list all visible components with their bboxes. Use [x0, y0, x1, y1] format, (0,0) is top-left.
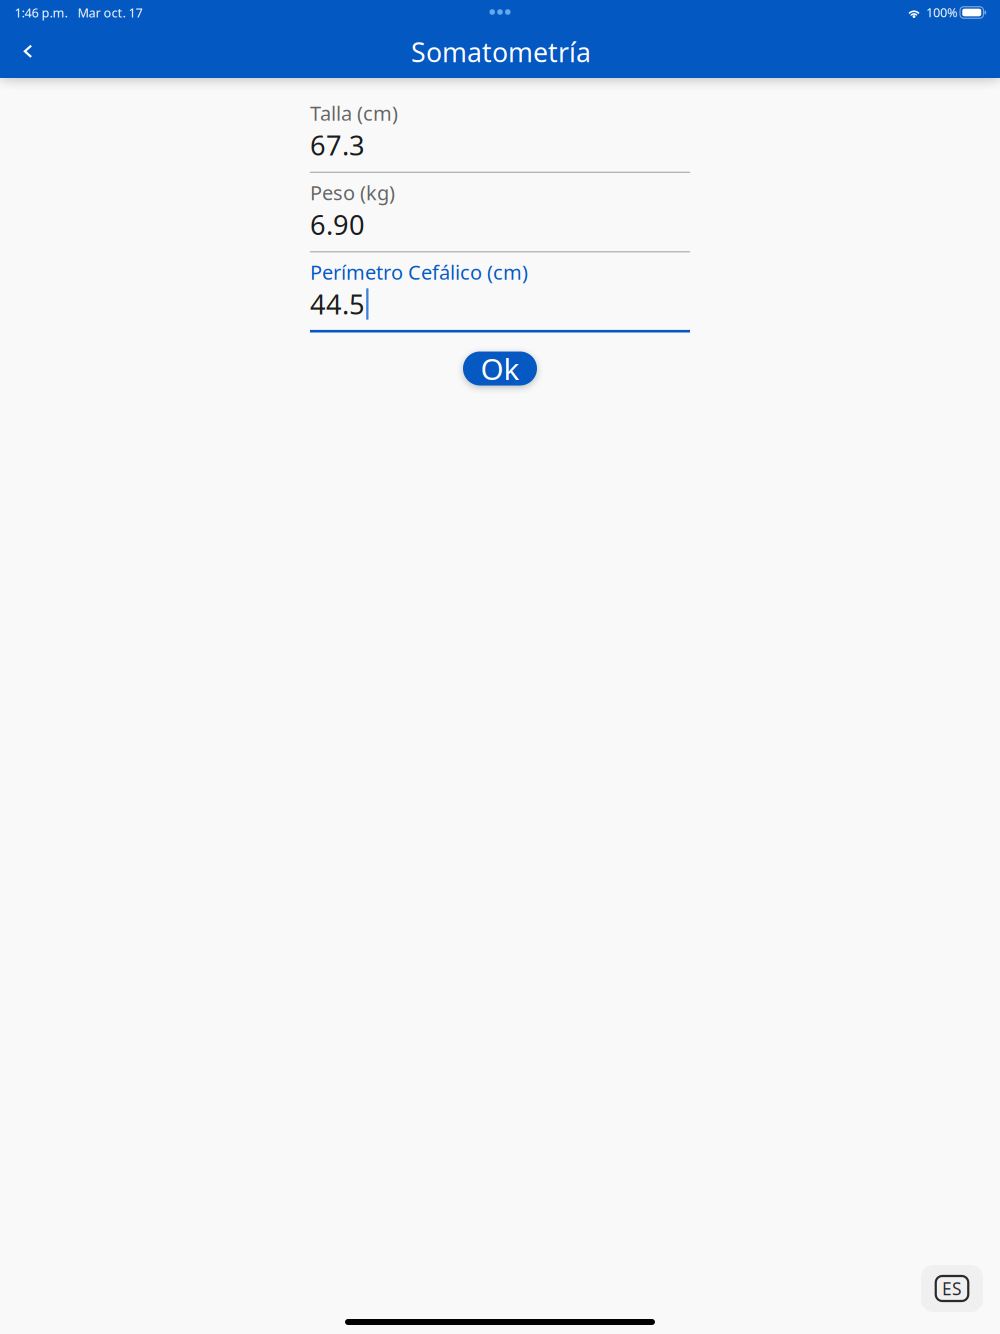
staticText: Somatometría [411, 34, 591, 70]
button[interactable]: Peso (kg) [310, 180, 690, 253]
button[interactable]: Back [6, 29, 50, 73]
staticText: ES [942, 1277, 962, 1300]
button[interactable]: Talla (cm) [310, 100, 690, 173]
staticText: 1:46 p.m. [14, 4, 67, 21]
staticText: Talla (cm) [310, 99, 398, 126]
staticText: Mar oct. 17 [77, 4, 142, 21]
staticText: 100% [926, 4, 957, 21]
button[interactable]: Keyboard language: Spanish [921, 1265, 983, 1312]
button[interactable]: Ok [463, 351, 537, 385]
staticText: Peso (kg) [310, 179, 395, 206]
staticText: 67.3 [310, 126, 365, 163]
staticText: Perímetro Cefálico (cm) [310, 258, 528, 285]
button[interactable]: Perímetro Cefálico (cm) [310, 259, 690, 332]
staticText: 44.5 [310, 285, 365, 322]
staticText: 6.90 [310, 206, 365, 243]
staticText: Ok [480, 348, 519, 389]
